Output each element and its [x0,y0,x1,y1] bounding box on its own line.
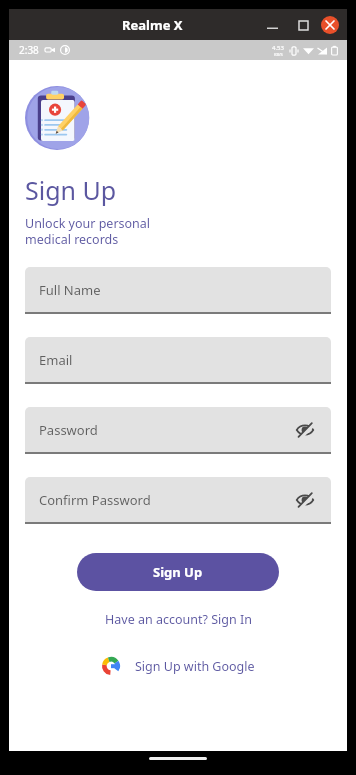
staticText: Confirm Password [39,491,151,509]
staticText: Full Name [39,281,101,299]
button[interactable]: Minimize [261,14,283,36]
staticText: Password [39,421,98,439]
staticText: 4.53 [272,44,284,52]
staticText: 2:38 [19,43,39,57]
staticText: Email [39,351,73,369]
button[interactable]: Maximize [292,14,314,36]
button[interactable]: Email [25,337,331,384]
button[interactable]: Close [321,16,339,34]
button[interactable]: Sign Up [77,553,279,591]
staticText: Realme X [122,16,183,34]
button[interactable]: Sign Up with Google [96,654,261,678]
button[interactable]: Have an account? Sign In [99,608,258,631]
button[interactable]: Password [25,407,331,454]
button[interactable]: Home [149,757,207,760]
staticText: Unlock your personal medical records [25,215,151,247]
staticText: Sign Up [25,173,117,207]
button[interactable]: Confirm Password [25,477,331,524]
button[interactable]: Toggle password visibility [293,488,317,512]
staticText: Have an account? Sign In [105,611,252,628]
button[interactable]: Full Name [25,267,331,314]
staticText: Sign Up [153,563,203,581]
staticText: Sign Up with Google [135,658,255,675]
button[interactable]: Toggle password visibility [293,418,317,442]
staticText: KB/S [274,52,283,57]
